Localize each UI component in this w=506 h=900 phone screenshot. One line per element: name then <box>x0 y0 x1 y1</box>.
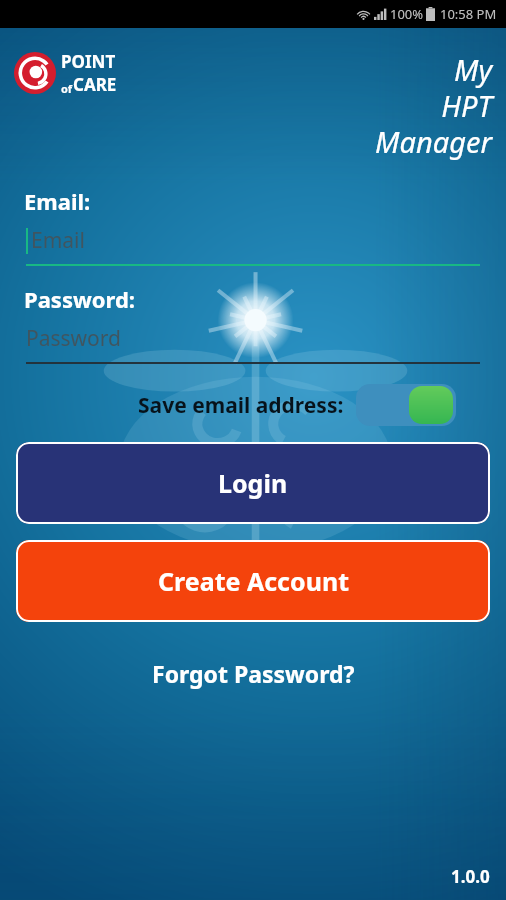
staticText: Save email address: <box>138 391 344 420</box>
button[interactable]: Save email address: <box>24 384 482 426</box>
button[interactable]: Email <box>26 226 480 266</box>
staticText: Password <box>26 324 121 353</box>
button[interactable]: Login <box>16 442 490 524</box>
staticText: 100% <box>390 5 424 23</box>
button[interactable]: Save email address toggle <box>356 384 456 426</box>
staticText: of <box>61 81 73 96</box>
staticText: Login <box>218 466 288 500</box>
staticText: POINT <box>61 50 116 73</box>
staticText: Password: <box>24 284 135 314</box>
staticText: 10:58 PM <box>440 5 497 23</box>
staticText: Forgot Password? <box>152 658 355 689</box>
staticText: 1.0.0 <box>451 865 490 888</box>
staticText: Create Account <box>158 564 349 598</box>
staticText: Email: <box>24 186 91 216</box>
button[interactable]: Create Account <box>16 540 490 622</box>
staticText: CARE <box>73 73 117 96</box>
button[interactable]: Forgot Password? <box>136 652 371 695</box>
button[interactable]: Password <box>26 324 480 364</box>
staticText: My HPT Manager <box>375 50 492 162</box>
staticText: Email <box>31 226 85 255</box>
